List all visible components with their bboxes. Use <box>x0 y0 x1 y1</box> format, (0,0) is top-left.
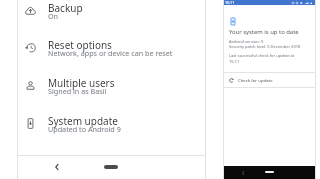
staticText: On <box>48 11 59 21</box>
staticText: 15:11 <box>225 0 235 5</box>
button[interactable]: Backup <box>17 0 205 37</box>
button[interactable]: Multiple users <box>17 75 205 112</box>
button[interactable]: System update <box>17 113 205 150</box>
staticText: Your system is up to date <box>229 28 299 36</box>
staticText: Backup <box>48 1 83 15</box>
staticText: Network, apps or device can be reset <box>48 48 173 58</box>
staticText: 15:11 <box>229 59 240 64</box>
button[interactable]: Back <box>51 161 63 173</box>
staticText: Android version: 9 <box>229 39 264 44</box>
button[interactable]: Reset options <box>17 37 205 74</box>
staticText: Reset options <box>48 38 112 52</box>
staticText: Multiple users <box>48 76 115 90</box>
button[interactable]: Home <box>104 165 118 169</box>
button[interactable]: Check for update <box>223 73 315 87</box>
staticText: Check for update <box>238 77 273 83</box>
staticText: System update <box>48 114 118 128</box>
staticText: Signed in as Basil <box>48 86 107 96</box>
staticText: Last successful check for update at <box>229 53 295 58</box>
button[interactable]: Back <box>240 170 246 176</box>
button[interactable]: Home <box>265 171 274 173</box>
staticText: Updated to Android 9 <box>48 124 121 134</box>
staticText: Security patch level: 5 December 2018 <box>229 44 301 49</box>
